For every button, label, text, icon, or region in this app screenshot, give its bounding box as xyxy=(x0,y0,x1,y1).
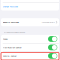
button[interactable]: Require Passcode xyxy=(1,18,59,26)
staticText: Control Center xyxy=(3,54,17,57)
staticText: Today xyxy=(3,38,8,40)
button[interactable]: Change Passcode xyxy=(1,2,59,10)
staticText: Change Passcode xyxy=(3,5,18,8)
button[interactable]: Today xyxy=(1,35,59,43)
staticText: ALLOW ACCESS WHEN LOCKED: xyxy=(4,31,25,33)
staticText: Notification Center xyxy=(3,46,22,49)
button[interactable]: Control Center xyxy=(1,52,59,60)
staticText: Immediately xyxy=(42,21,55,24)
staticText: Require Passcode xyxy=(3,21,19,24)
button[interactable]: Notification Center xyxy=(1,43,59,51)
